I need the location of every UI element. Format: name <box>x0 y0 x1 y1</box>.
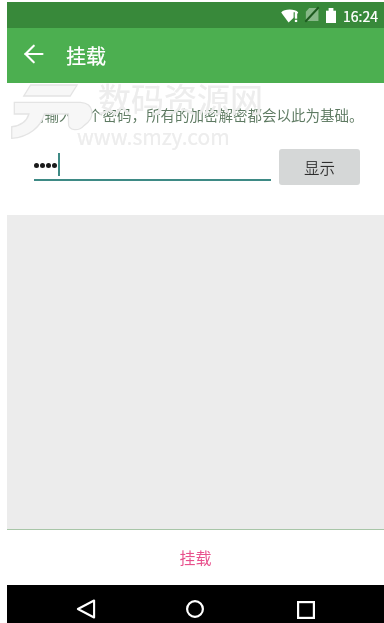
staticText: 请输入一个密码，所有的加密解密都会以此为基础。 <box>30 104 364 125</box>
staticText: 16:24 <box>343 6 378 26</box>
staticText: 挂载 <box>66 41 106 70</box>
button[interactable]: Back <box>16 36 52 72</box>
button[interactable]: Home <box>186 600 204 618</box>
staticText: www.smzy.com <box>77 121 230 151</box>
staticText: 显示 <box>304 156 336 178</box>
button[interactable]: 显示 <box>279 149 360 185</box>
staticText: 数码资源网 <box>98 74 263 122</box>
button[interactable]: Recent apps <box>297 601 315 619</box>
button[interactable]: Back <box>77 600 95 618</box>
button[interactable]: 挂载 <box>7 530 384 585</box>
staticText: 挂载 <box>179 545 212 568</box>
